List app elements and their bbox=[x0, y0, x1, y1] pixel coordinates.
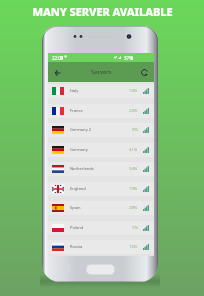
staticText: 12% bbox=[129, 244, 138, 250]
staticText: 34% bbox=[129, 166, 138, 172]
staticText: 7% bbox=[132, 225, 138, 231]
button[interactable]: Germany 2 bbox=[48, 123, 154, 137]
staticText: Poland bbox=[70, 225, 84, 231]
staticText: 41% bbox=[129, 147, 138, 153]
button[interactable]: Poland bbox=[48, 221, 154, 235]
staticText: MANY SERVER AVAILABLE bbox=[32, 4, 173, 19]
staticText: 9% bbox=[132, 127, 138, 133]
staticText: Russia bbox=[70, 244, 83, 250]
staticText: 22% bbox=[129, 108, 138, 114]
staticText: Italy bbox=[70, 88, 79, 94]
staticText: Germany 2 bbox=[70, 127, 92, 133]
staticText: 14% bbox=[129, 88, 138, 94]
button[interactable]: England bbox=[48, 182, 154, 196]
staticText: Servers bbox=[91, 68, 112, 76]
staticText: England bbox=[70, 186, 86, 192]
staticText: France bbox=[70, 108, 83, 114]
button[interactable]: Netherlands bbox=[48, 162, 154, 176]
button[interactable]: Germany bbox=[48, 143, 154, 157]
staticText: Spain bbox=[70, 205, 81, 211]
staticText: 28% bbox=[129, 205, 138, 211]
button[interactable]: Italy bbox=[48, 84, 154, 98]
button[interactable]: Back bbox=[51, 66, 64, 79]
button[interactable]: Russia bbox=[48, 240, 154, 254]
staticText: Netherlands bbox=[70, 166, 94, 172]
button[interactable]: Refresh bbox=[137, 65, 151, 79]
staticText: 19% bbox=[129, 186, 138, 192]
button[interactable]: Spain bbox=[48, 201, 154, 215]
staticText: 22:08 bbox=[52, 55, 64, 61]
staticText: 57% bbox=[124, 55, 133, 61]
staticText: Germany bbox=[70, 147, 88, 153]
button[interactable]: France bbox=[48, 104, 154, 118]
